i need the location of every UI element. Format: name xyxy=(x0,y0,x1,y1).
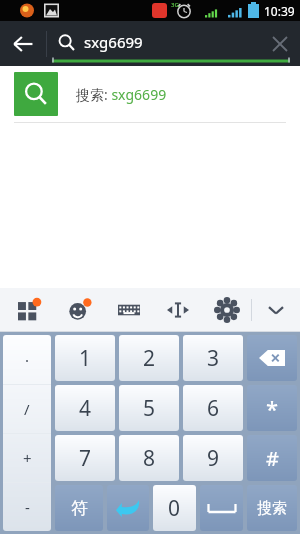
button[interactable]: 7 xyxy=(55,435,115,481)
staticText: * xyxy=(266,393,279,423)
staticText: + xyxy=(23,448,32,468)
button[interactable]: 符 xyxy=(55,485,103,531)
button[interactable]: Back xyxy=(0,21,46,66)
button[interactable]: 1 xyxy=(55,335,115,381)
button[interactable]: - xyxy=(3,483,51,531)
button[interactable]: Move cursor xyxy=(153,288,202,332)
staticText: sxg6699 xyxy=(84,32,143,52)
button[interactable]: / xyxy=(3,385,51,433)
staticText: 1 xyxy=(79,344,92,373)
staticText: 0 xyxy=(168,494,181,523)
staticText: # xyxy=(266,445,279,472)
button[interactable]: Hide keyboard xyxy=(252,288,300,332)
staticText: 3 xyxy=(207,344,220,373)
staticText: - xyxy=(25,497,30,517)
staticText: 10:39 xyxy=(264,3,295,19)
staticText: 搜索: sxg6699 xyxy=(76,85,167,104)
button[interactable]: Emoji xyxy=(54,288,104,332)
button[interactable]: 5 xyxy=(119,385,179,431)
button[interactable]: Return xyxy=(107,485,149,531)
button[interactable]: · xyxy=(3,335,51,384)
button[interactable]: Space xyxy=(200,485,243,531)
button[interactable]: Clear xyxy=(260,24,300,64)
staticText: 5 xyxy=(143,394,156,423)
button[interactable]: Apps xyxy=(4,288,54,332)
button[interactable]: 8 xyxy=(119,435,179,481)
button[interactable]: Backspace xyxy=(247,335,297,381)
staticText: 8 xyxy=(143,444,156,473)
staticText: 9 xyxy=(207,444,220,473)
button[interactable]: Settings xyxy=(202,288,251,332)
button[interactable]: 搜索 xyxy=(247,485,297,531)
button[interactable]: 0 xyxy=(153,485,196,531)
button[interactable]: 2 xyxy=(119,335,179,381)
staticText: 2 xyxy=(143,344,156,373)
staticText: 6 xyxy=(207,394,220,423)
button[interactable]: 4 xyxy=(55,385,115,431)
button[interactable]: 9 xyxy=(183,435,243,481)
staticText: 7 xyxy=(79,444,92,473)
staticText: · xyxy=(25,350,30,370)
button[interactable]: 6 xyxy=(183,385,243,431)
staticText: 搜索 xyxy=(257,499,287,518)
staticText: 3G xyxy=(171,1,179,9)
button[interactable]: + xyxy=(3,434,51,482)
staticText: 符 xyxy=(71,498,88,519)
button[interactable]: Keyboard layout xyxy=(104,288,153,332)
staticText: 4 xyxy=(79,394,92,423)
button[interactable]: 3 xyxy=(183,335,243,381)
button[interactable]: * xyxy=(247,385,297,431)
button[interactable]: 搜索: sxg6699 xyxy=(0,66,300,122)
staticText: / xyxy=(24,399,30,419)
button[interactable]: # xyxy=(247,435,297,481)
